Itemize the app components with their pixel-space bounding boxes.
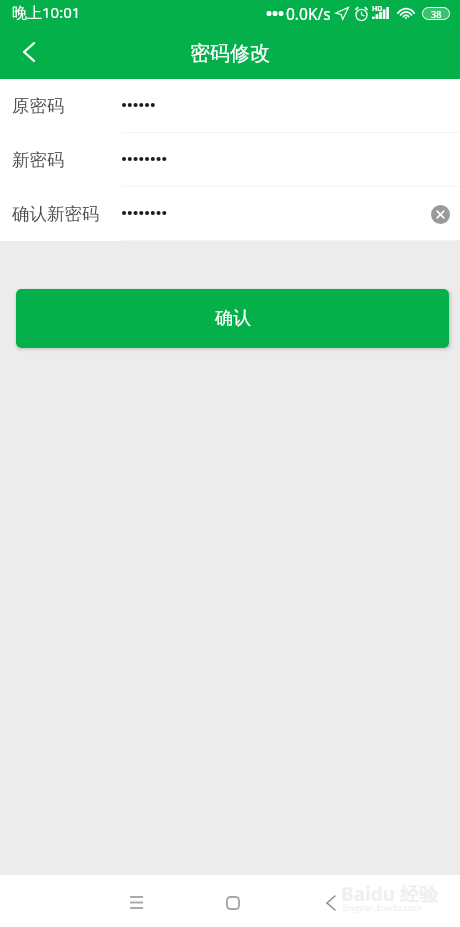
button[interactable]: Back	[4, 28, 52, 76]
staticText: 确认新密码	[12, 203, 100, 225]
staticText: •••	[266, 2, 285, 24]
staticText: HD	[372, 4, 383, 14]
staticText: 新密码	[12, 149, 65, 171]
button[interactable]: 确认新密码	[0, 187, 460, 241]
button[interactable]: 确认	[16, 289, 449, 348]
staticText: 原密码	[12, 95, 65, 117]
button[interactable]: Home	[211, 881, 255, 925]
staticText: 密码修改	[190, 41, 270, 66]
staticText: 晚上10:01	[12, 2, 81, 22]
staticText: 确认	[215, 307, 251, 330]
button[interactable]: 新密码	[0, 133, 460, 187]
button[interactable]: 原密码	[0, 79, 460, 133]
button[interactable]: Recent apps	[114, 880, 158, 924]
staticText: 38	[431, 8, 442, 20]
staticText: 0.0K/s	[286, 3, 331, 24]
button[interactable]: Clear text	[427, 201, 453, 227]
staticText: jingyan.baidu.com	[343, 901, 423, 913]
staticText: Baidu 经验	[341, 881, 438, 907]
button[interactable]: Back	[309, 881, 353, 925]
